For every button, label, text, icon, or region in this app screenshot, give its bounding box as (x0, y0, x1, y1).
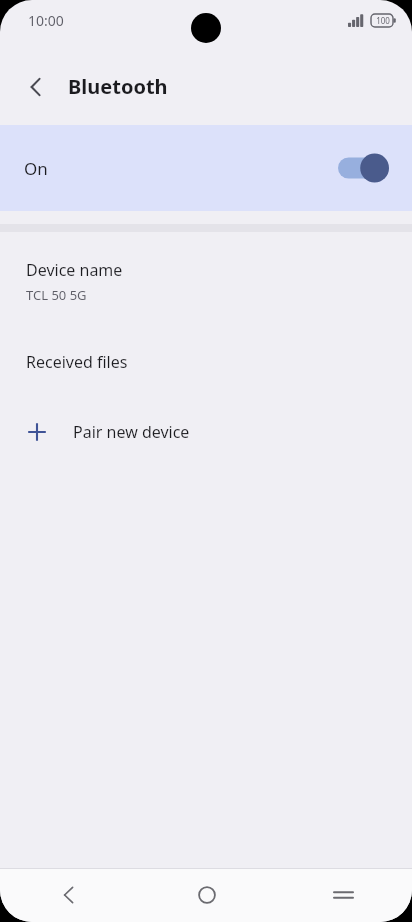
button[interactable]: Received files (0, 347, 412, 381)
staticText: Received files (26, 351, 128, 373)
button[interactable]: Back (0, 868, 138, 922)
button[interactable]: Bluetooth toggle (338, 152, 390, 184)
staticText: TCL 50 5G (26, 286, 87, 304)
staticText: 100 (376, 15, 390, 26)
button[interactable]: Home (138, 868, 275, 922)
button[interactable]: Recent apps (275, 868, 412, 922)
staticText: 10:00 (28, 11, 64, 30)
staticText: Pair new device (73, 421, 190, 443)
button[interactable]: On (0, 125, 412, 211)
staticText: Bluetooth (68, 73, 168, 100)
staticText: Device name (26, 259, 123, 281)
button[interactable]: Pair new device (0, 417, 412, 451)
button[interactable]: Back (12, 63, 60, 111)
staticText: On (24, 157, 48, 180)
button[interactable]: Device name (0, 255, 412, 314)
